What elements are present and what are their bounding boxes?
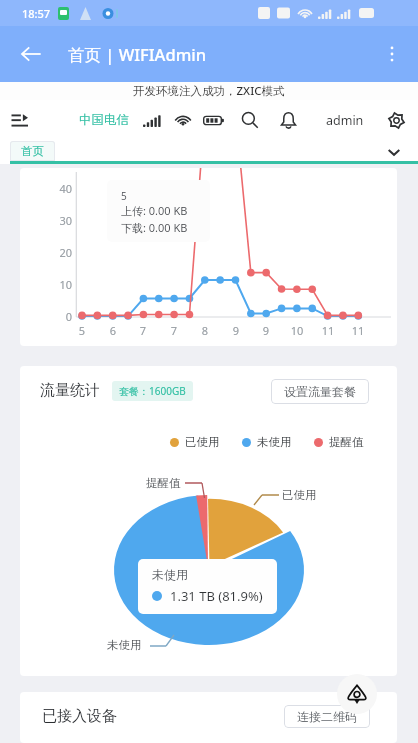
- staticText: 9: [222, 323, 250, 338]
- staticText: 连接二维码: [297, 709, 357, 724]
- button[interactable]: 已使用: [170, 435, 220, 449]
- button[interactable]: 连接二维码: [284, 705, 370, 728]
- staticText: 9: [252, 323, 280, 338]
- staticText: 中国电信: [79, 112, 129, 128]
- staticText: 开发环境注入成功，ZXIC模式: [133, 83, 285, 99]
- button[interactable]: Search: [237, 107, 263, 133]
- staticText: 40: [44, 181, 72, 196]
- staticText: 已接入设备: [42, 707, 117, 726]
- staticText: 上传: 0.00 KB: [121, 203, 188, 218]
- staticText: 已使用: [282, 488, 317, 502]
- staticText: 11: [314, 323, 342, 338]
- staticText: 提醒值: [329, 435, 364, 449]
- staticText: 下载: 0.00 KB: [121, 220, 188, 235]
- button[interactable]: Back: [12, 35, 50, 73]
- button[interactable]: 提醒值: [314, 435, 364, 449]
- button[interactable]: Menu: [6, 107, 32, 133]
- staticText: 未使用: [107, 638, 142, 652]
- staticText: 设置流量套餐: [284, 384, 356, 399]
- staticText: 0: [44, 309, 72, 324]
- staticText: 已使用: [185, 435, 220, 449]
- button[interactable]: 首页: [10, 141, 55, 161]
- staticText: 10: [44, 277, 72, 292]
- button[interactable]: Expand: [382, 140, 406, 164]
- staticText: 20: [44, 245, 72, 260]
- staticText: 18:57: [22, 6, 51, 21]
- button[interactable]: admin: [326, 112, 364, 129]
- button[interactable]: Notifications: [275, 107, 301, 133]
- staticText: 11: [344, 323, 372, 338]
- staticText: 首页: [21, 144, 44, 158]
- button[interactable]: More options: [374, 36, 410, 72]
- staticText: 1.31 TB (81.9%): [170, 587, 263, 605]
- staticText: 10: [283, 323, 311, 338]
- staticText: 7: [160, 323, 188, 338]
- button[interactable]: Launch: [337, 674, 377, 714]
- staticText: 6: [99, 323, 127, 338]
- staticText: 7: [129, 323, 157, 338]
- staticText: 5: [121, 189, 127, 203]
- staticText: 未使用: [152, 567, 188, 582]
- button[interactable]: Settings: [383, 107, 409, 133]
- staticText: 套餐：1600GB: [119, 384, 186, 398]
- staticText: 未使用: [257, 435, 292, 449]
- staticText: 提醒值: [146, 476, 181, 490]
- staticText: 5: [68, 323, 96, 338]
- button[interactable]: 未使用: [242, 435, 292, 449]
- staticText: 首页 | WIFIAdmin: [68, 43, 207, 66]
- staticText: 流量统计: [40, 381, 100, 400]
- button[interactable]: 设置流量套餐: [271, 379, 369, 404]
- staticText: 8: [191, 323, 219, 338]
- staticText: 30: [44, 213, 72, 228]
